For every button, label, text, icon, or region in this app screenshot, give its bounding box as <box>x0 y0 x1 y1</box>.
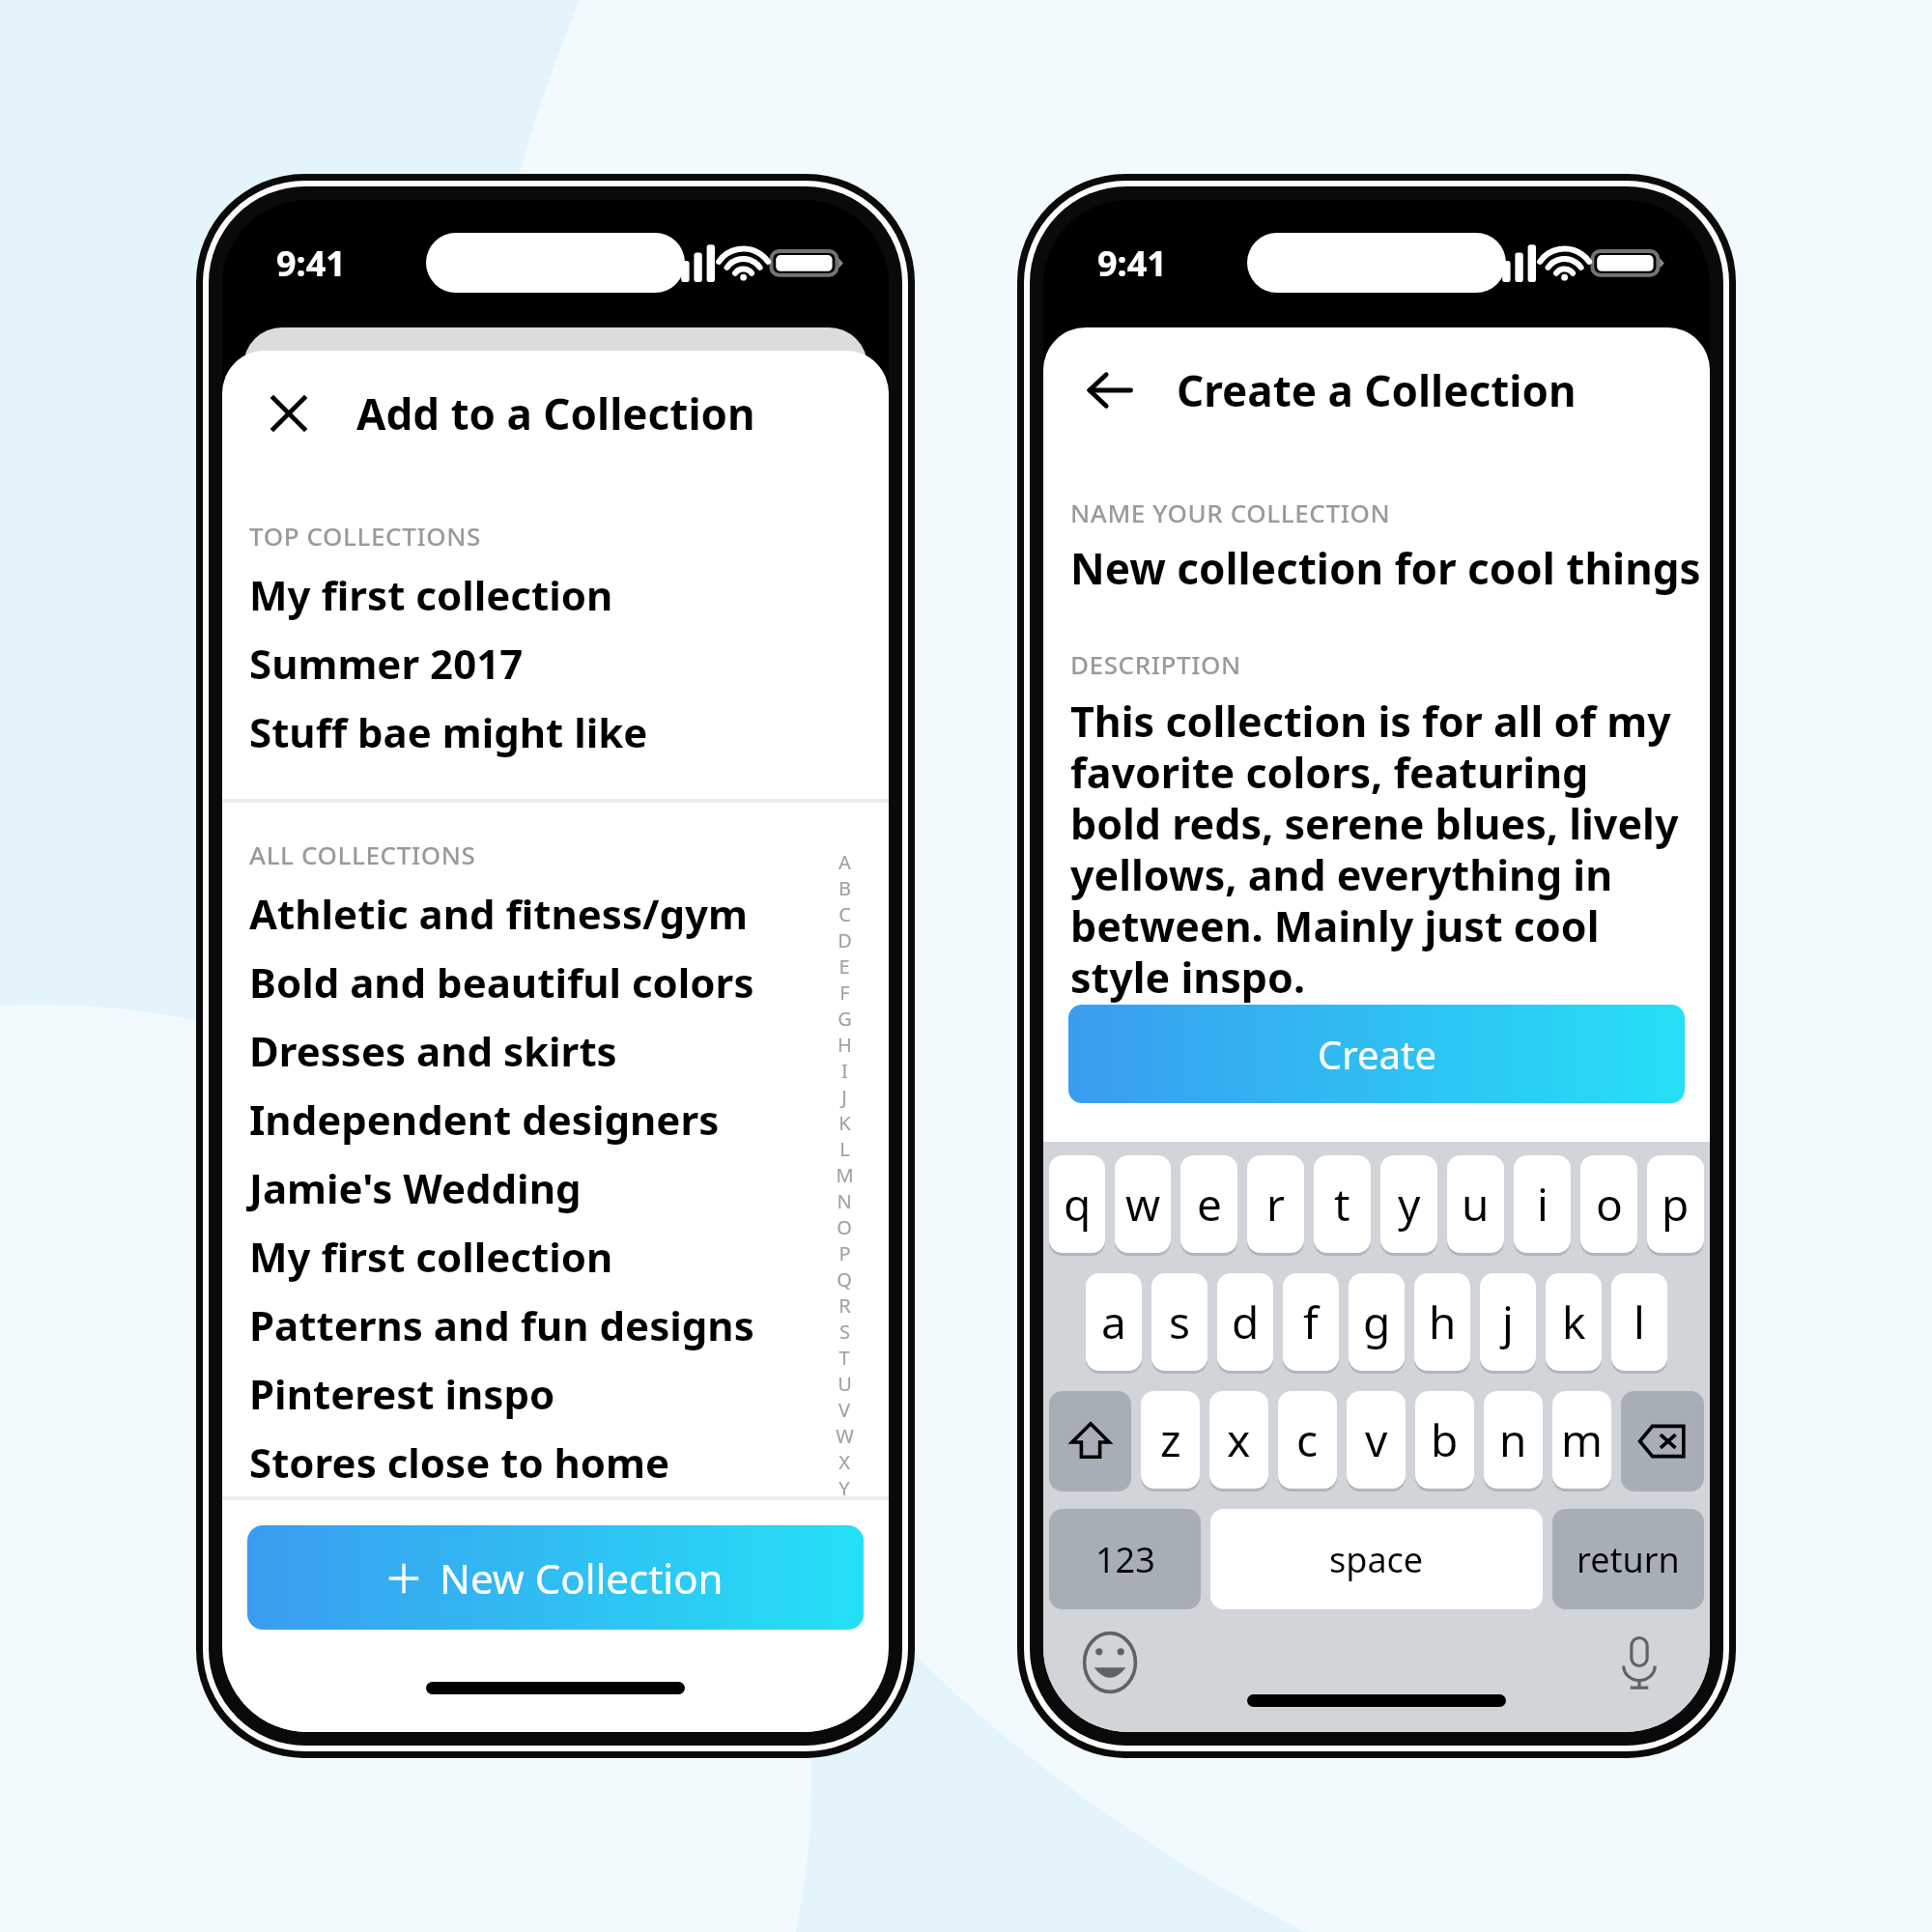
button[interactable]: l <box>1611 1273 1667 1371</box>
staticText: M <box>836 1162 854 1188</box>
button[interactable]: c <box>1278 1391 1337 1489</box>
staticText: Add to a Collection <box>356 384 755 442</box>
button[interactable]: x <box>1209 1391 1268 1489</box>
staticText: 123 <box>1095 1536 1155 1583</box>
staticText: I <box>841 1058 848 1084</box>
button[interactable]: Close <box>247 372 330 455</box>
button[interactable]: o <box>1580 1155 1637 1253</box>
staticText: Athletic and fitness/gym <box>249 886 748 941</box>
staticText: d <box>1232 1292 1260 1352</box>
button[interactable]: m <box>1552 1391 1611 1489</box>
staticText: My first collection <box>249 567 613 622</box>
staticText: V <box>838 1397 850 1423</box>
button[interactable]: Backspace <box>1621 1391 1704 1492</box>
staticText: Patterns and fun designs <box>249 1297 754 1352</box>
button[interactable]: Stores close to home <box>222 1428 889 1496</box>
button[interactable]: h <box>1414 1273 1470 1371</box>
button[interactable]: 123 <box>1049 1509 1201 1609</box>
staticText: space <box>1329 1536 1424 1583</box>
staticText: O <box>837 1214 852 1240</box>
staticText: L <box>839 1136 850 1162</box>
button[interactable]: t <box>1314 1155 1371 1253</box>
staticText: B <box>838 875 851 901</box>
staticText: Y <box>838 1475 850 1496</box>
staticText: D <box>838 927 852 953</box>
button[interactable]: Dresses and skirts <box>222 1016 889 1085</box>
staticText: f <box>1303 1292 1319 1352</box>
staticText: Dresses and skirts <box>249 1023 617 1078</box>
button[interactable]: v <box>1347 1391 1406 1489</box>
staticText: Q <box>837 1266 852 1293</box>
staticText: U <box>838 1371 852 1397</box>
button[interactable]: Dictation <box>1604 1627 1675 1698</box>
staticText: R <box>838 1293 851 1319</box>
staticText: y <box>1398 1174 1421 1235</box>
button[interactable]: New collection for cool things <box>1043 539 1710 597</box>
button[interactable]: Jamie's Wedding <box>222 1153 889 1222</box>
button[interactable]: Shift <box>1049 1391 1131 1492</box>
button[interactable]: Pinterest inspo <box>222 1359 889 1428</box>
staticText: u <box>1462 1174 1490 1235</box>
button[interactable]: This collection is for all of my favorit… <box>1043 693 1710 1005</box>
staticText: r <box>1266 1174 1285 1235</box>
button[interactable]: Summer 2017 <box>222 629 889 697</box>
button[interactable]: Emoji <box>1074 1627 1146 1698</box>
button[interactable]: f <box>1283 1273 1339 1371</box>
button[interactable]: p <box>1647 1155 1704 1253</box>
staticText: 9:41 <box>1097 240 1167 287</box>
button[interactable]: New Collection <box>247 1525 864 1630</box>
button[interactable]: i <box>1514 1155 1571 1253</box>
staticText: Independent designers <box>249 1092 720 1147</box>
button[interactable]: e <box>1180 1155 1237 1253</box>
button[interactable]: Back <box>1068 349 1151 432</box>
button[interactable]: Athletic and fitness/gym <box>222 879 889 948</box>
button[interactable]: Create <box>1068 1005 1685 1103</box>
button[interactable]: u <box>1447 1155 1504 1253</box>
button[interactable]: r <box>1247 1155 1304 1253</box>
staticText: S <box>839 1319 850 1345</box>
staticText: h <box>1429 1292 1457 1352</box>
button[interactable]: Patterns and fun designs <box>222 1291 889 1359</box>
button[interactable]: Alphabet index <box>825 849 864 1496</box>
button[interactable]: w <box>1115 1155 1171 1253</box>
staticText: i <box>1537 1174 1548 1235</box>
staticText: p <box>1662 1174 1690 1235</box>
staticText: C <box>838 901 851 927</box>
staticText: w <box>1125 1174 1161 1235</box>
button[interactable]: d <box>1217 1273 1273 1371</box>
button[interactable]: a <box>1086 1273 1142 1371</box>
staticText: DESCRIPTION <box>1070 647 1241 681</box>
staticText: l <box>1634 1292 1645 1352</box>
button[interactable]: k <box>1546 1273 1602 1371</box>
staticText: s <box>1169 1292 1191 1352</box>
staticText: W <box>836 1423 854 1449</box>
staticText: G <box>838 1006 852 1032</box>
staticText: x <box>1227 1409 1251 1470</box>
staticText: F <box>839 980 850 1006</box>
staticText: Create a Collection <box>1177 361 1577 419</box>
button[interactable]: Independent designers <box>222 1085 889 1153</box>
button[interactable]: j <box>1480 1273 1536 1371</box>
button[interactable]: Bold and beautiful colors <box>222 948 889 1016</box>
staticText: m <box>1561 1409 1604 1470</box>
button[interactable]: My first collection <box>222 560 889 629</box>
staticText: j <box>1502 1292 1514 1352</box>
staticText: New collection for cool things <box>1070 539 1701 597</box>
button[interactable]: z <box>1141 1391 1200 1489</box>
button[interactable]: space <box>1210 1509 1543 1609</box>
button[interactable]: g <box>1349 1273 1405 1371</box>
button[interactable]: return <box>1552 1509 1704 1609</box>
button[interactable]: My first collection <box>222 1222 889 1291</box>
staticText: Bold and beautiful colors <box>249 954 754 1009</box>
button[interactable]: y <box>1380 1155 1437 1253</box>
staticText: K <box>838 1110 851 1136</box>
staticText: My first collection <box>249 1229 613 1284</box>
button[interactable]: n <box>1484 1391 1543 1489</box>
button[interactable]: q <box>1049 1155 1105 1253</box>
staticText: g <box>1363 1292 1391 1352</box>
button[interactable]: s <box>1151 1273 1207 1371</box>
button[interactable]: Stuff bae might like <box>222 697 889 766</box>
button[interactable]: b <box>1415 1391 1474 1489</box>
staticText: Stuff bae might like <box>249 704 648 759</box>
staticText: q <box>1064 1174 1092 1235</box>
